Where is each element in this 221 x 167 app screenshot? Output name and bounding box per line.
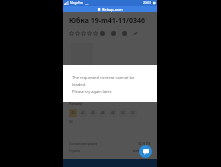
staticText: 4G [85, 2, 89, 5]
button[interactable]: 42 [79, 109, 87, 117]
staticText: Состав материала [69, 142, 98, 146]
staticText: Размер [69, 101, 83, 106]
staticText: 48 [111, 111, 115, 115]
staticText: 42 [81, 111, 85, 115]
staticText: Bebop.com [102, 7, 123, 12]
staticText: мей руб. 39 [133, 149, 151, 153]
button[interactable]: Action [100, 31, 105, 36]
staticText: Страна [69, 149, 80, 153]
button[interactable]: 48 [109, 109, 117, 117]
button[interactable]: Action [111, 31, 116, 36]
staticText: 20:03 [143, 1, 151, 5]
staticText: 50 [121, 111, 125, 115]
button[interactable]: 40 [69, 109, 77, 117]
staticText: 40 [71, 111, 75, 115]
button[interactable]: 50 [119, 109, 127, 117]
staticText: 3 279 руб. [69, 84, 104, 94]
button[interactable]: 52 [129, 109, 137, 117]
button[interactable]: Action [122, 31, 127, 36]
staticText: MegaFon [70, 1, 84, 5]
staticText: 46 [101, 111, 105, 115]
staticText: The requested content cannot be loaded. … [72, 75, 135, 94]
staticText: 52 [131, 111, 135, 115]
button[interactable]: 46 [99, 109, 107, 117]
button[interactable]: Chat support [139, 145, 152, 158]
button[interactable]: 44 [89, 109, 97, 117]
staticText: 54 [69, 120, 73, 124]
staticText: 92 % ПЭ [138, 142, 151, 146]
staticText: Юбка 19-m41-11/0346 [69, 16, 145, 26]
staticText: 44 [91, 111, 95, 115]
